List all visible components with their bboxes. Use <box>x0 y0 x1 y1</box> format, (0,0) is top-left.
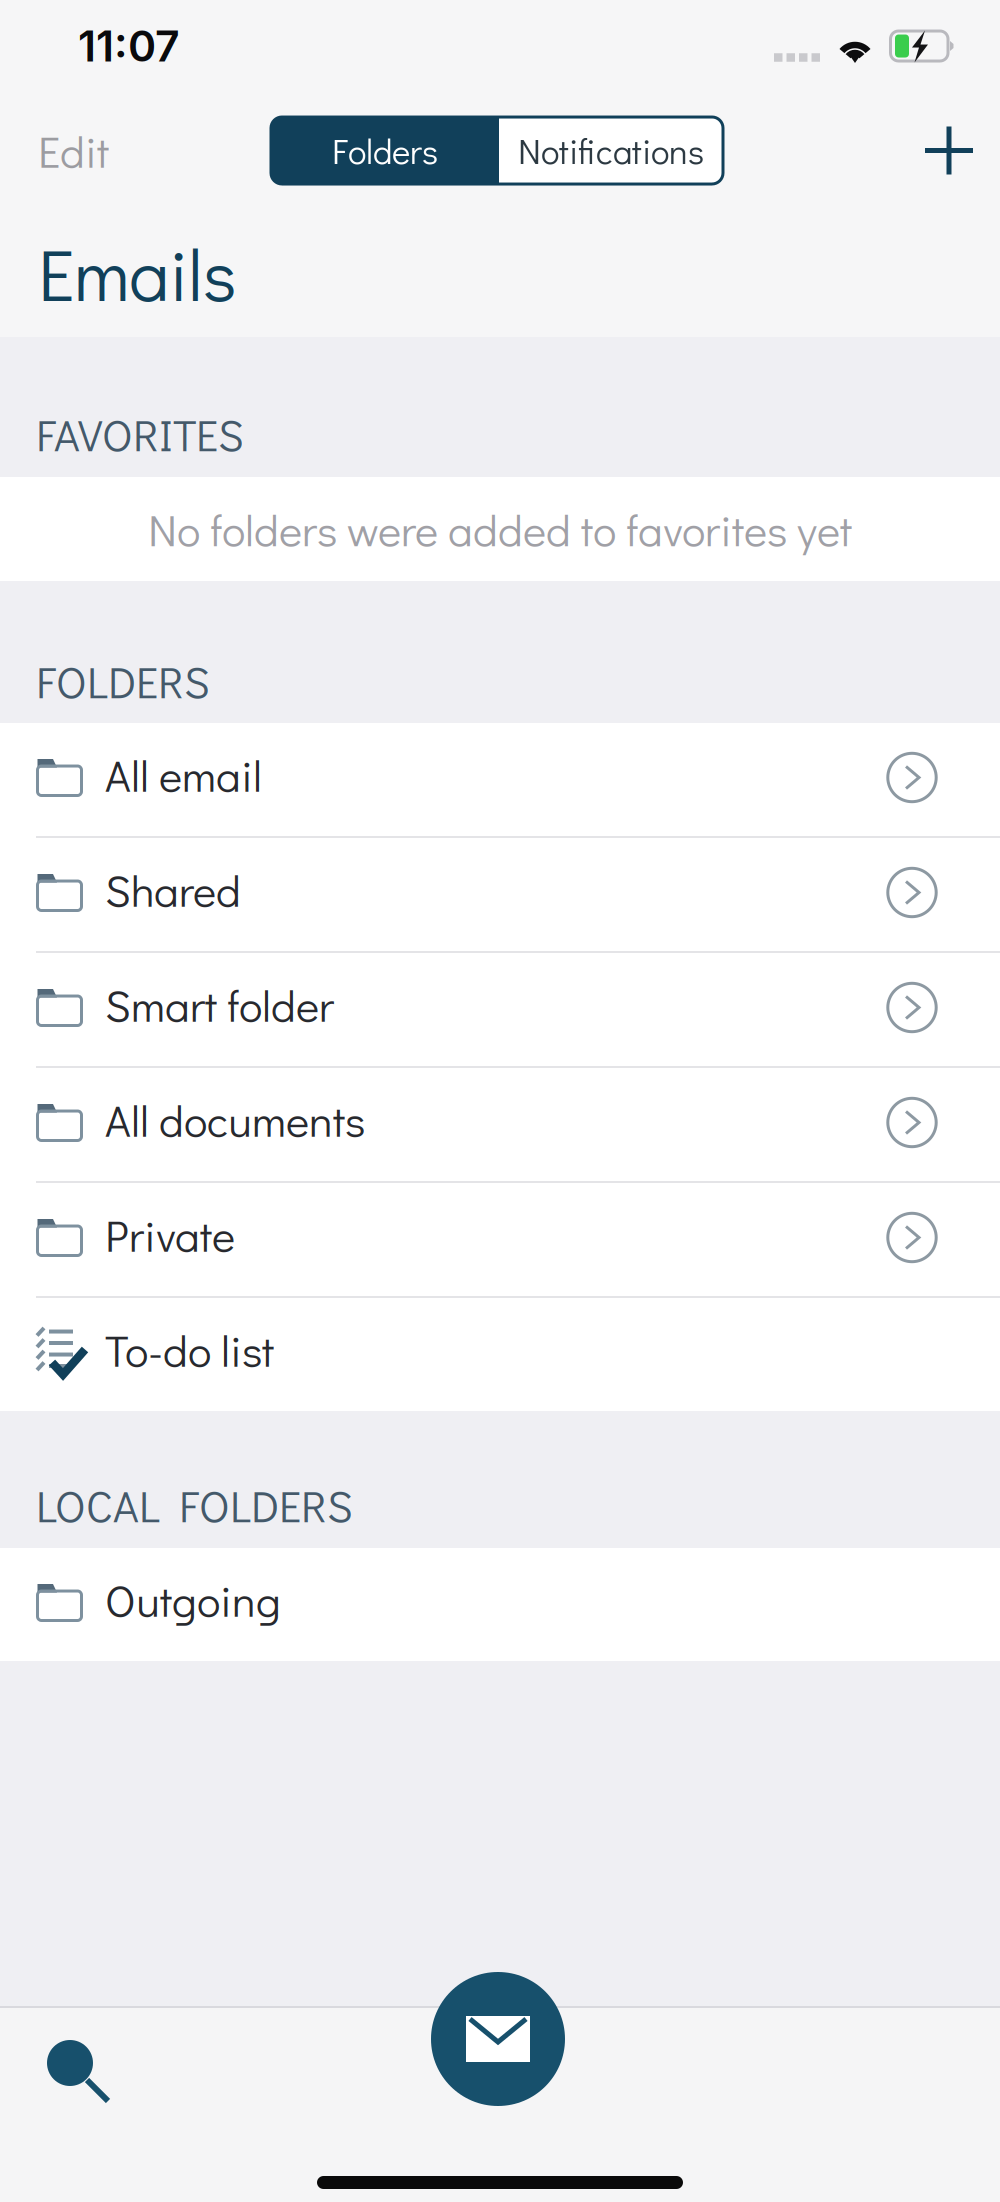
staticText: All documents <box>105 1091 365 1148</box>
staticText: All email <box>105 746 262 803</box>
staticText: FOLDERS <box>36 652 210 710</box>
button[interactable]: Shared <box>0 838 1000 951</box>
staticText: LOCAL FOLDERS <box>36 1476 353 1534</box>
staticText: 11:07 <box>78 20 180 72</box>
staticText: Folders <box>332 128 438 173</box>
staticText: Private <box>105 1206 235 1263</box>
button[interactable]: Folders <box>271 117 499 184</box>
button[interactable]: Private <box>0 1183 1000 1296</box>
button[interactable]: Compose <box>431 1972 565 2106</box>
staticText: Outgoing <box>105 1571 281 1628</box>
staticText: Shared <box>105 861 241 918</box>
staticText: Notifications <box>518 128 704 173</box>
button[interactable]: All email <box>0 723 1000 836</box>
staticText: To-do list <box>105 1321 274 1378</box>
button[interactable]: Notifications <box>499 117 723 184</box>
button[interactable]: Search <box>0 2008 172 2136</box>
staticText: Smart folder <box>105 976 334 1033</box>
button[interactable]: All documents <box>0 1068 1000 1181</box>
button[interactable]: Edit <box>0 92 143 209</box>
button[interactable]: Smart folder <box>0 953 1000 1066</box>
staticText: FAVORITES <box>36 405 244 463</box>
staticText: Emails <box>38 226 236 320</box>
staticText: No folders were added to favorites yet <box>148 500 852 558</box>
button[interactable]: Outgoing <box>0 1548 1000 1661</box>
button[interactable]: New folder <box>888 92 1000 209</box>
button[interactable]: To-do list <box>0 1298 1000 1411</box>
staticText: Edit <box>38 122 109 179</box>
